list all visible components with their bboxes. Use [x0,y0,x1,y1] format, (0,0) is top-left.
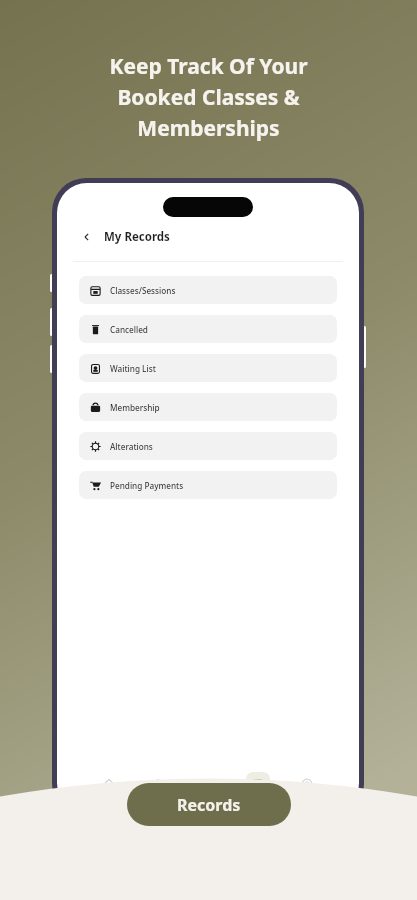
button[interactable]: home [97,772,121,796]
button[interactable]: Cancelled [79,315,337,343]
button[interactable]: Waiting List [79,354,337,382]
button[interactable]: Classes/Sessions [79,276,337,304]
staticText: Keep Track Of Your Booked Classes & Memb… [36,52,381,142]
staticText: My Records [104,229,170,245]
staticText: Pending Payments [110,480,184,491]
button[interactable]: store [146,772,170,796]
button[interactable]: records [246,772,270,796]
button[interactable]: cal [196,772,220,796]
button[interactable]: Membership [79,393,337,421]
staticText: Alterations [110,441,153,452]
button[interactable]: Records [127,783,291,826]
staticText: Records [177,794,241,816]
staticText: Waiting List [110,363,156,374]
button[interactable]: Back [78,228,96,246]
button[interactable]: Alterations [79,432,337,460]
staticText: Classes/Sessions [110,285,176,296]
button[interactable]: Pending Payments [79,471,337,499]
staticText: Membership [110,402,160,413]
button[interactable]: profile [295,772,319,796]
staticText: Cancelled [110,324,148,335]
